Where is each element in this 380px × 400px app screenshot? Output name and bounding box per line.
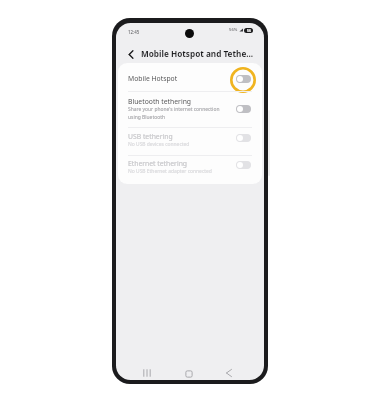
- button[interactable]: USB tethering: [118, 127, 262, 155]
- button[interactable]: Mobile Hotspot switch: [236, 75, 251, 83]
- staticText: 56: [247, 28, 251, 33]
- staticText: Ethernet tethering: [128, 159, 188, 168]
- button[interactable]: Bluetooth tethering switch: [236, 105, 251, 113]
- staticText: No USB Ethernet adapter connected: [128, 168, 212, 175]
- staticText: Mobile Hotspot: [128, 74, 178, 83]
- button[interactable]: Home: [183, 368, 195, 380]
- button[interactable]: Bluetooth tethering: [118, 91, 262, 127]
- button[interactable]: Ethernet tethering: [118, 155, 262, 184]
- button[interactable]: Navigate up: [124, 47, 138, 61]
- button[interactable]: USB tethering switch: [236, 134, 251, 142]
- button[interactable]: Back: [223, 367, 235, 379]
- staticText: No USB devices connected: [128, 141, 190, 148]
- button[interactable]: Ethernet tethering switch: [236, 161, 251, 169]
- staticText: Mobile Hotspot and Tethe...: [141, 48, 254, 59]
- staticText: USB tethering: [128, 132, 173, 141]
- staticText: Bluetooth tethering: [128, 97, 192, 106]
- staticText: 12:45: [128, 29, 140, 35]
- staticText: Share your phone's internet connection u…: [128, 106, 220, 120]
- staticText: 56%: [229, 27, 238, 33]
- button[interactable]: Mobile Hotspot: [118, 63, 262, 91]
- button[interactable]: Recent apps: [141, 367, 153, 379]
